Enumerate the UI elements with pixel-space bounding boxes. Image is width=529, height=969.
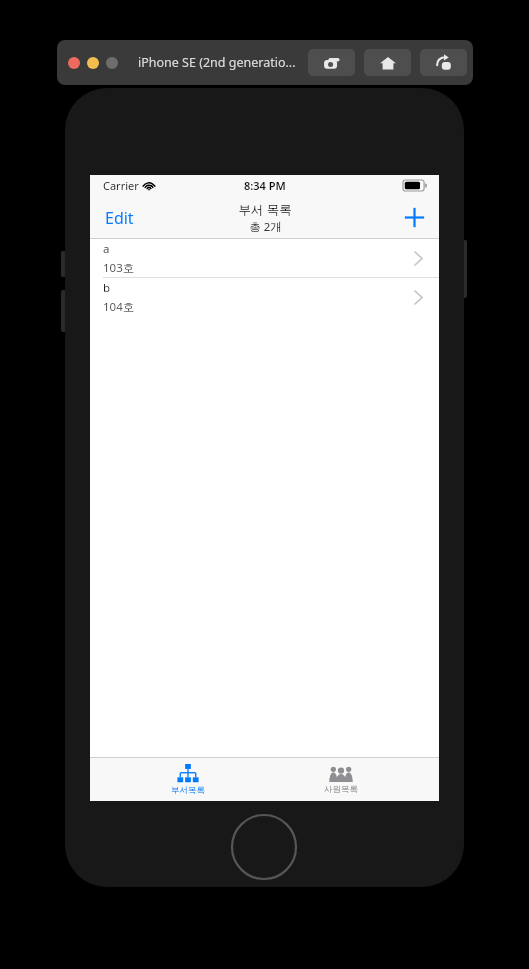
button[interactable]: Add <box>396 199 433 236</box>
button[interactable]: Home <box>364 49 411 76</box>
staticText: Carrier <box>103 178 139 193</box>
button[interactable]: Edit <box>96 200 143 236</box>
button[interactable]: b <box>90 278 439 316</box>
staticText: 사원목록 <box>324 784 358 795</box>
button[interactable]: a <box>90 239 439 277</box>
button[interactable]: Zoom <box>106 57 118 69</box>
staticText: 부서 목록 <box>238 201 292 218</box>
staticText: a <box>103 241 110 257</box>
staticText: Edit <box>105 207 134 229</box>
button[interactable]: 사원목록 <box>286 758 396 801</box>
staticText: iPhone SE (2nd generatio... <box>138 54 296 71</box>
staticText: b <box>103 280 111 296</box>
staticText: 부서목록 <box>171 785 205 796</box>
button[interactable]: Close <box>68 57 80 69</box>
staticText: 8:34 PM <box>244 178 286 193</box>
button[interactable]: Share <box>420 49 467 76</box>
button[interactable]: 부서목록 <box>133 758 243 801</box>
staticText: 103호 <box>103 260 135 276</box>
button[interactable]: Screenshot <box>308 49 355 76</box>
staticText: 총 2개 <box>249 219 282 235</box>
staticText: 104호 <box>103 299 135 315</box>
button[interactable]: Minimize <box>87 57 99 69</box>
